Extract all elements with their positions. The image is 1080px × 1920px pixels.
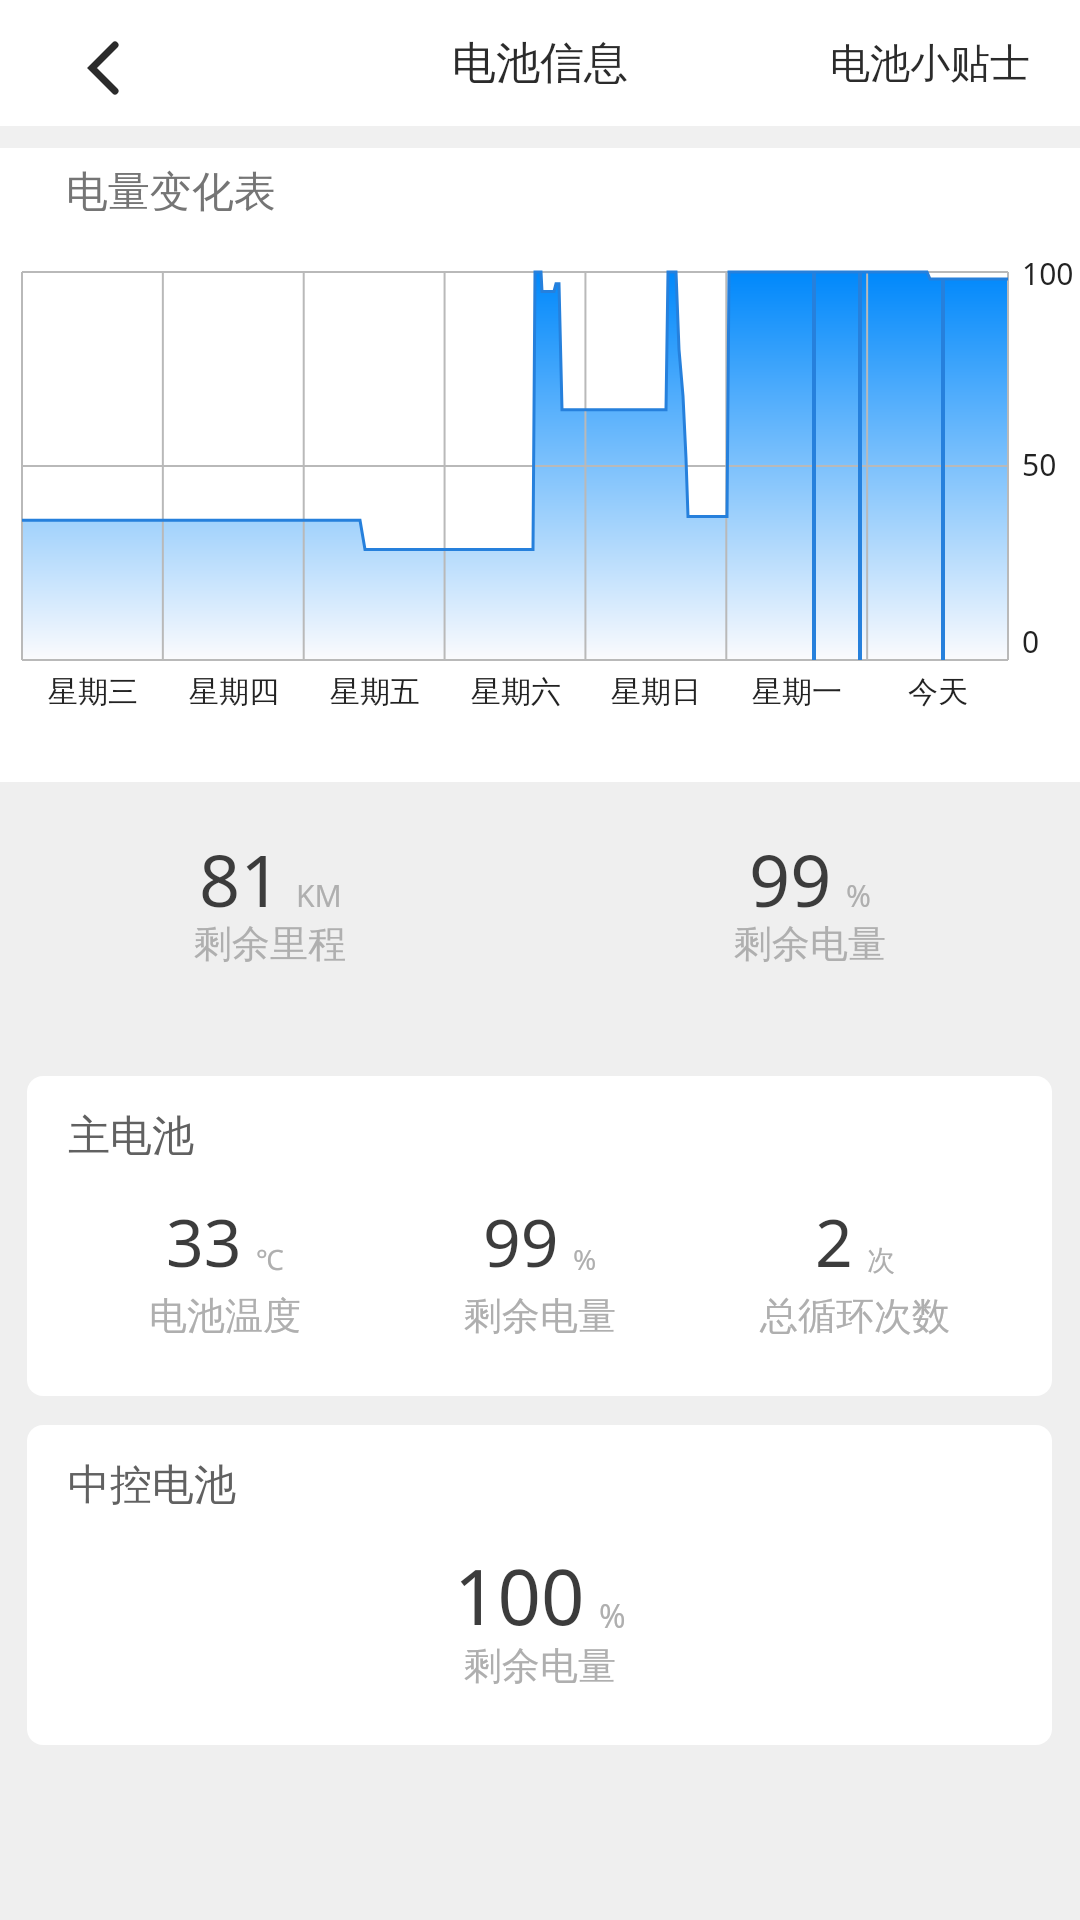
staticText: 星期四 (189, 673, 279, 711)
staticText: 81 (199, 830, 282, 928)
staticText: ℃ (256, 1240, 284, 1278)
staticText: 电池温度 (149, 1292, 301, 1340)
staticText: 星期六 (471, 673, 561, 711)
staticText: 50 (1022, 444, 1057, 485)
staticText: % (599, 1594, 626, 1638)
staticText: 剩余电量 (734, 920, 886, 968)
staticText: 99 (749, 830, 832, 928)
staticText: 星期三 (48, 673, 138, 711)
staticText: 33 (166, 1196, 242, 1286)
staticText: 2 (815, 1196, 853, 1286)
staticText: 电量变化表 (66, 166, 276, 219)
staticText: 100 (1022, 253, 1074, 294)
staticText: 星期日 (611, 673, 701, 711)
staticText: 剩余电量 (464, 1642, 616, 1690)
staticText: 今天 (908, 673, 968, 711)
staticText: 电池小贴士 (830, 38, 1030, 88)
button[interactable]: 电池小贴士 (830, 38, 1030, 88)
staticText: 中控电池 (68, 1459, 236, 1512)
staticText: 剩余里程 (194, 920, 346, 968)
staticText: 99 (483, 1196, 559, 1286)
staticText: 星期一 (752, 673, 842, 711)
staticText: 总循环次数 (760, 1292, 950, 1340)
staticText: % (846, 875, 871, 916)
staticText: 电池信息 (452, 36, 628, 91)
staticText: 次 (867, 1243, 895, 1278)
staticText: 星期五 (330, 673, 420, 711)
staticText: KM (296, 875, 342, 916)
staticText: 100 (454, 1544, 585, 1648)
staticText: 剩余电量 (464, 1292, 616, 1340)
button[interactable] (70, 36, 134, 100)
staticText: 主电池 (68, 1110, 194, 1163)
staticText: 0 (1022, 621, 1040, 662)
staticText: % (573, 1240, 597, 1278)
